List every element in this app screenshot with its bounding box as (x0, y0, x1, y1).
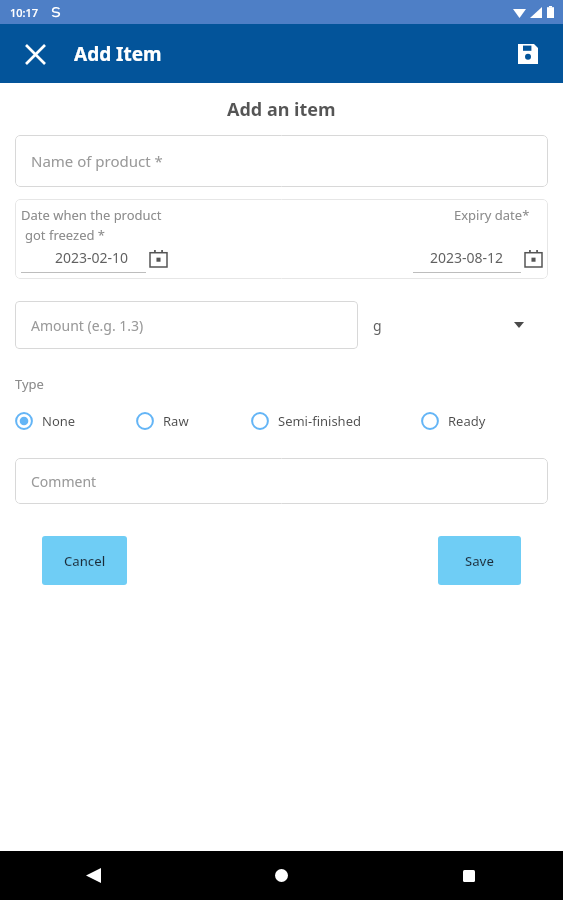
button[interactable]: Amount (e.g. 1.3) (15, 301, 358, 349)
staticText: 10:17 (10, 5, 39, 20)
button[interactable]: Home (187, 851, 375, 900)
button[interactable]: 2023-02-10 (21, 248, 167, 273)
button[interactable]: Save (507, 33, 549, 75)
button[interactable]: Cancel (42, 536, 127, 585)
button[interactable]: None (15, 406, 136, 436)
button[interactable]: Ready (421, 406, 486, 436)
button[interactable]: Back (0, 851, 187, 900)
button[interactable]: Recent apps (375, 851, 563, 900)
staticText: Add Item (74, 41, 162, 67)
staticText: Comment (31, 472, 97, 491)
button[interactable]: Comment (15, 458, 548, 504)
button[interactable]: Name of product * (15, 135, 548, 187)
button[interactable]: Save (438, 536, 521, 585)
staticText: Semi-finished (278, 412, 361, 430)
button[interactable]: g (358, 301, 548, 349)
staticText: Name of product * (31, 151, 163, 171)
staticText: Expiry date* (454, 206, 530, 224)
staticText: Raw (163, 412, 189, 430)
staticText: Add an item (227, 97, 336, 122)
other: Pick date (150, 250, 167, 267)
staticText: Cancel (64, 552, 106, 570)
staticText: Amount (e.g. 1.3) (31, 316, 144, 335)
staticText: g (373, 316, 382, 335)
button[interactable]: Semi-finished (251, 406, 421, 436)
staticText: Ready (448, 412, 486, 430)
staticText: Date when the product (21, 206, 162, 224)
button[interactable]: 2023-08-12 (413, 248, 542, 273)
staticText: Save (465, 552, 494, 570)
staticText: 2023-08-12 (430, 248, 504, 267)
staticText: 2023-02-10 (55, 248, 129, 267)
button[interactable]: Close (14, 33, 56, 75)
staticText: Type (15, 375, 44, 393)
staticText: got freezed * (25, 226, 106, 244)
button[interactable]: Raw (136, 406, 251, 436)
staticText: None (42, 412, 76, 430)
other: Pick date (525, 250, 542, 267)
